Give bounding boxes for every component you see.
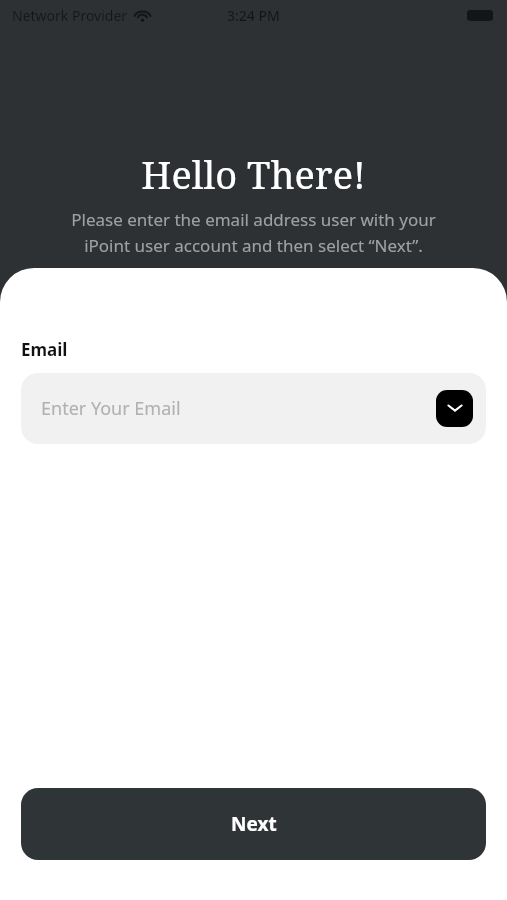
staticText: Network Provider xyxy=(12,6,128,25)
staticText: 3:24 PM xyxy=(227,6,280,25)
button[interactable]: Email xyxy=(436,390,473,427)
staticText: Please enter the email address user with… xyxy=(71,208,436,257)
button[interactable]: Next xyxy=(21,788,486,860)
staticText: Email xyxy=(21,338,68,361)
staticText: Hello There! xyxy=(141,148,366,200)
button[interactable]: Enter Your Email xyxy=(21,373,486,444)
staticText: Enter Your Email xyxy=(41,396,181,421)
staticText: Next xyxy=(231,811,277,837)
